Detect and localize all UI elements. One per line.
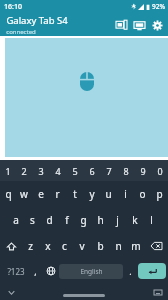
button[interactable]: w xyxy=(16,181,32,207)
button[interactable]: 5 xyxy=(66,160,83,181)
button[interactable]: 2 xyxy=(16,160,32,181)
button[interactable]: a xyxy=(7,207,24,233)
staticText: u xyxy=(105,187,112,201)
staticText: 2 xyxy=(21,165,27,177)
staticText: 7 xyxy=(106,165,112,177)
button[interactable]: z xyxy=(22,233,39,259)
button[interactable]: 6 xyxy=(83,160,100,181)
staticText: p xyxy=(156,187,163,201)
button[interactable]: ?123 xyxy=(2,259,29,283)
button[interactable]: Touchpad xyxy=(5,38,168,157)
button[interactable]: h xyxy=(92,207,109,233)
staticText: k xyxy=(132,213,138,227)
staticText: r xyxy=(55,187,60,201)
staticText: o xyxy=(139,187,146,201)
button[interactable]: 4 xyxy=(49,160,66,181)
button[interactable]: English xyxy=(59,264,123,279)
staticText: h xyxy=(97,213,104,227)
staticText: d xyxy=(46,213,53,227)
staticText: 9 xyxy=(140,165,146,177)
staticText: ?123 xyxy=(7,266,25,277)
staticText: , xyxy=(34,265,37,277)
button[interactable]: . xyxy=(123,259,138,283)
staticText: 3 xyxy=(38,165,44,177)
button[interactable]: i xyxy=(117,181,134,207)
staticText: 8 xyxy=(123,165,129,177)
staticText: b xyxy=(97,239,104,253)
button[interactable]: 9 xyxy=(134,160,151,181)
button[interactable]: 8 xyxy=(117,160,134,181)
staticText: c xyxy=(62,239,67,253)
staticText: v xyxy=(79,239,85,253)
button[interactable]: Keyboard layout xyxy=(152,286,164,298)
button[interactable]: Shift xyxy=(0,233,22,259)
button[interactable]: t xyxy=(66,181,83,207)
staticText: 1 xyxy=(5,165,11,177)
staticText: e xyxy=(38,187,44,201)
button[interactable]: Backspace xyxy=(145,233,168,259)
staticText: 4 xyxy=(55,165,61,177)
staticText: z xyxy=(28,239,33,253)
button[interactable]: 7 xyxy=(100,160,117,181)
button[interactable]: m xyxy=(127,233,145,259)
button[interactable]: x xyxy=(39,233,56,259)
staticText: 6 xyxy=(89,165,95,177)
button[interactable]: g xyxy=(75,207,92,233)
staticText: m xyxy=(131,239,141,253)
button[interactable]: Change language xyxy=(42,259,59,283)
button[interactable]: Screen mirroring xyxy=(112,16,130,34)
staticText: 16:10 xyxy=(4,2,22,12)
button[interactable]: , xyxy=(29,259,42,283)
button[interactable]: u xyxy=(100,181,117,207)
button[interactable]: f xyxy=(58,207,75,233)
button[interactable]: c xyxy=(56,233,73,259)
button[interactable]: p xyxy=(151,181,168,207)
staticText: 92% xyxy=(152,2,165,11)
staticText: n xyxy=(115,239,122,253)
staticText: Galaxy Tab S4 xyxy=(6,14,68,27)
staticText: connected xyxy=(6,28,36,36)
button[interactable]: s xyxy=(24,207,41,233)
staticText: x xyxy=(45,239,51,253)
button[interactable]: k xyxy=(126,207,143,233)
staticText: f xyxy=(65,213,69,227)
staticText: q xyxy=(5,187,12,201)
staticText: a xyxy=(13,213,19,227)
button[interactable]: Hide keyboard xyxy=(5,286,17,298)
button[interactable]: Settings xyxy=(148,16,166,34)
button[interactable]: d xyxy=(41,207,58,233)
staticText: 0 xyxy=(157,165,163,177)
button[interactable]: l xyxy=(143,207,160,233)
staticText: i xyxy=(124,187,127,201)
staticText: g xyxy=(80,213,87,227)
staticText: l xyxy=(150,213,153,227)
button[interactable]: Presentation xyxy=(130,16,148,34)
staticText: t xyxy=(73,187,77,201)
button[interactable]: q xyxy=(0,181,16,207)
staticText: y xyxy=(89,187,95,201)
button[interactable]: o xyxy=(134,181,151,207)
button[interactable]: 0 xyxy=(151,160,168,181)
button[interactable]: e xyxy=(32,181,49,207)
button[interactable]: n xyxy=(109,233,127,259)
staticText: English xyxy=(80,267,103,276)
button[interactable]: v xyxy=(73,233,91,259)
staticText: 5 xyxy=(72,165,78,177)
staticText: w xyxy=(20,187,28,201)
button[interactable]: b xyxy=(91,233,109,259)
staticText: j xyxy=(116,213,119,227)
staticText: s xyxy=(30,213,35,227)
button[interactable]: Enter xyxy=(138,263,166,279)
staticText: . xyxy=(129,265,132,277)
button[interactable]: 1 xyxy=(0,160,16,181)
button[interactable]: j xyxy=(109,207,126,233)
button[interactable]: r xyxy=(49,181,66,207)
button[interactable]: y xyxy=(83,181,100,207)
button[interactable]: 3 xyxy=(32,160,49,181)
